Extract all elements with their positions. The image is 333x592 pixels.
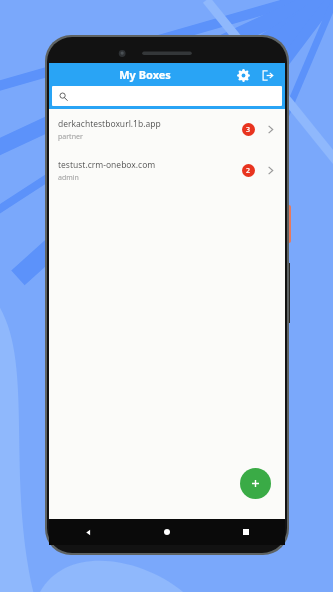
staticText: derkachtestboxurl.1b.app	[58, 118, 161, 130]
button[interactable]: Log out	[257, 65, 277, 85]
staticText: 2	[246, 166, 251, 176]
button[interactable]: Recent apps	[206, 519, 285, 545]
staticText: testust.crm-onebox.com	[58, 159, 156, 171]
button[interactable]: Settings	[233, 65, 253, 85]
button[interactable]: Back	[49, 519, 127, 545]
button[interactable]: derkachtestboxurl.1b.app	[49, 109, 285, 150]
staticText: 3	[246, 125, 251, 135]
staticText: My Boxes	[57, 67, 233, 82]
button[interactable]: Home	[127, 519, 206, 545]
staticText: admin	[58, 173, 79, 183]
staticText: partner	[58, 132, 83, 142]
button[interactable]	[52, 86, 282, 106]
button[interactable]: testust.crm-onebox.com	[49, 150, 285, 191]
button[interactable]: Add box	[240, 468, 271, 499]
